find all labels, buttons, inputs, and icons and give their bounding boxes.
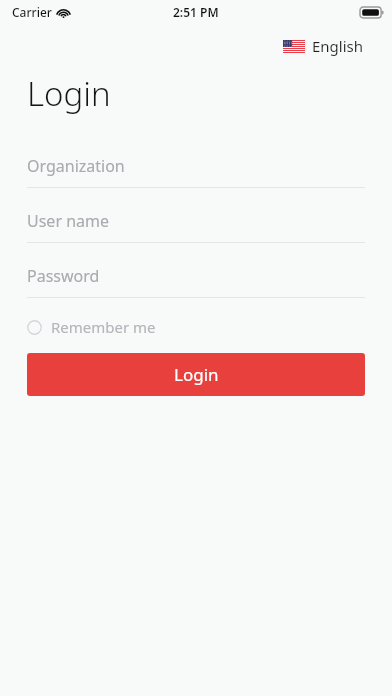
staticText: Organization bbox=[27, 155, 125, 177]
staticText: English bbox=[312, 36, 364, 56]
staticText: Carrier bbox=[12, 4, 52, 20]
button[interactable]: Password bbox=[0, 264, 392, 298]
other: United States flag bbox=[283, 40, 305, 53]
staticText: 2:51 PM bbox=[173, 4, 219, 20]
button[interactable]: United States flag bbox=[281, 34, 366, 58]
staticText: Login bbox=[174, 363, 219, 386]
staticText: Password bbox=[27, 265, 100, 287]
button[interactable]: Remember me bbox=[27, 313, 164, 341]
button[interactable]: Organization bbox=[0, 154, 392, 188]
staticText: Remember me bbox=[51, 317, 156, 337]
button[interactable]: Login bbox=[27, 353, 365, 396]
staticText: Login bbox=[27, 71, 111, 116]
button[interactable]: User name bbox=[0, 209, 392, 243]
staticText: User name bbox=[27, 210, 110, 232]
